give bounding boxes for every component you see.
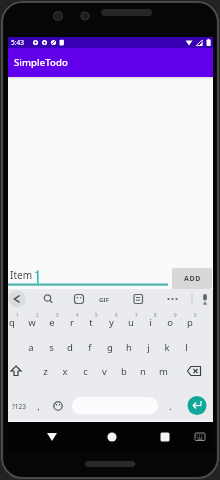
staticText: k — [164, 341, 170, 354]
staticText: b — [121, 365, 127, 378]
staticText: v — [102, 365, 107, 378]
staticText: 0 — [194, 312, 197, 318]
staticText: t — [89, 316, 93, 329]
button[interactable] — [77, 422, 145, 452]
staticText: x — [62, 365, 68, 378]
staticText: p — [187, 316, 193, 329]
staticText: c — [83, 365, 88, 378]
staticText: z — [43, 365, 48, 378]
staticText: e — [49, 316, 55, 329]
staticText: o — [167, 316, 173, 329]
button[interactable] — [145, 422, 213, 452]
staticText: 3 — [56, 312, 59, 318]
staticText: . — [169, 400, 172, 412]
staticText: 7 — [135, 312, 138, 318]
staticText: 5 — [95, 312, 98, 318]
staticText: u — [128, 316, 134, 329]
staticText: l — [185, 341, 188, 354]
staticText: 9 — [174, 312, 177, 318]
button[interactable]: ADD — [172, 268, 212, 289]
staticText: s — [49, 341, 54, 354]
staticText: j — [147, 341, 150, 354]
staticText: GIF — [99, 296, 109, 304]
staticText: m — [159, 365, 168, 378]
button[interactable] — [8, 422, 77, 452]
staticText: a — [28, 341, 34, 354]
staticText: w — [28, 316, 36, 329]
staticText: 2 — [36, 312, 39, 318]
staticText: ?123 — [12, 402, 26, 411]
staticText: g — [107, 341, 113, 354]
staticText: f — [88, 341, 92, 354]
staticText: 6 — [115, 312, 118, 318]
staticText: , — [37, 400, 40, 412]
staticText: Item 1 — [10, 268, 41, 282]
staticText: 4 — [76, 312, 79, 318]
staticText: SimpleTodo — [14, 56, 68, 69]
staticText: n — [140, 365, 146, 378]
staticText: 8 — [154, 312, 157, 318]
staticText: d — [67, 341, 73, 354]
staticText: h — [126, 341, 132, 354]
staticText: y — [109, 316, 114, 329]
staticText: ADD — [184, 274, 201, 284]
staticText: r — [70, 316, 74, 329]
staticText: i — [149, 316, 152, 329]
staticText: 1 — [16, 312, 19, 318]
staticText: 5:43 — [11, 38, 24, 47]
staticText: q — [9, 316, 15, 329]
